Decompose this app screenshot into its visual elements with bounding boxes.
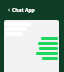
button[interactable] [39, 47, 58, 50]
button[interactable] [38, 42, 58, 45]
staticText: Chat App [12, 7, 35, 14]
button[interactable]: Back [7, 8, 11, 12]
button[interactable] [42, 57, 58, 60]
button[interactable] [41, 37, 58, 40]
button[interactable] [36, 52, 58, 55]
button[interactable]: Back [0, 0, 64, 20]
